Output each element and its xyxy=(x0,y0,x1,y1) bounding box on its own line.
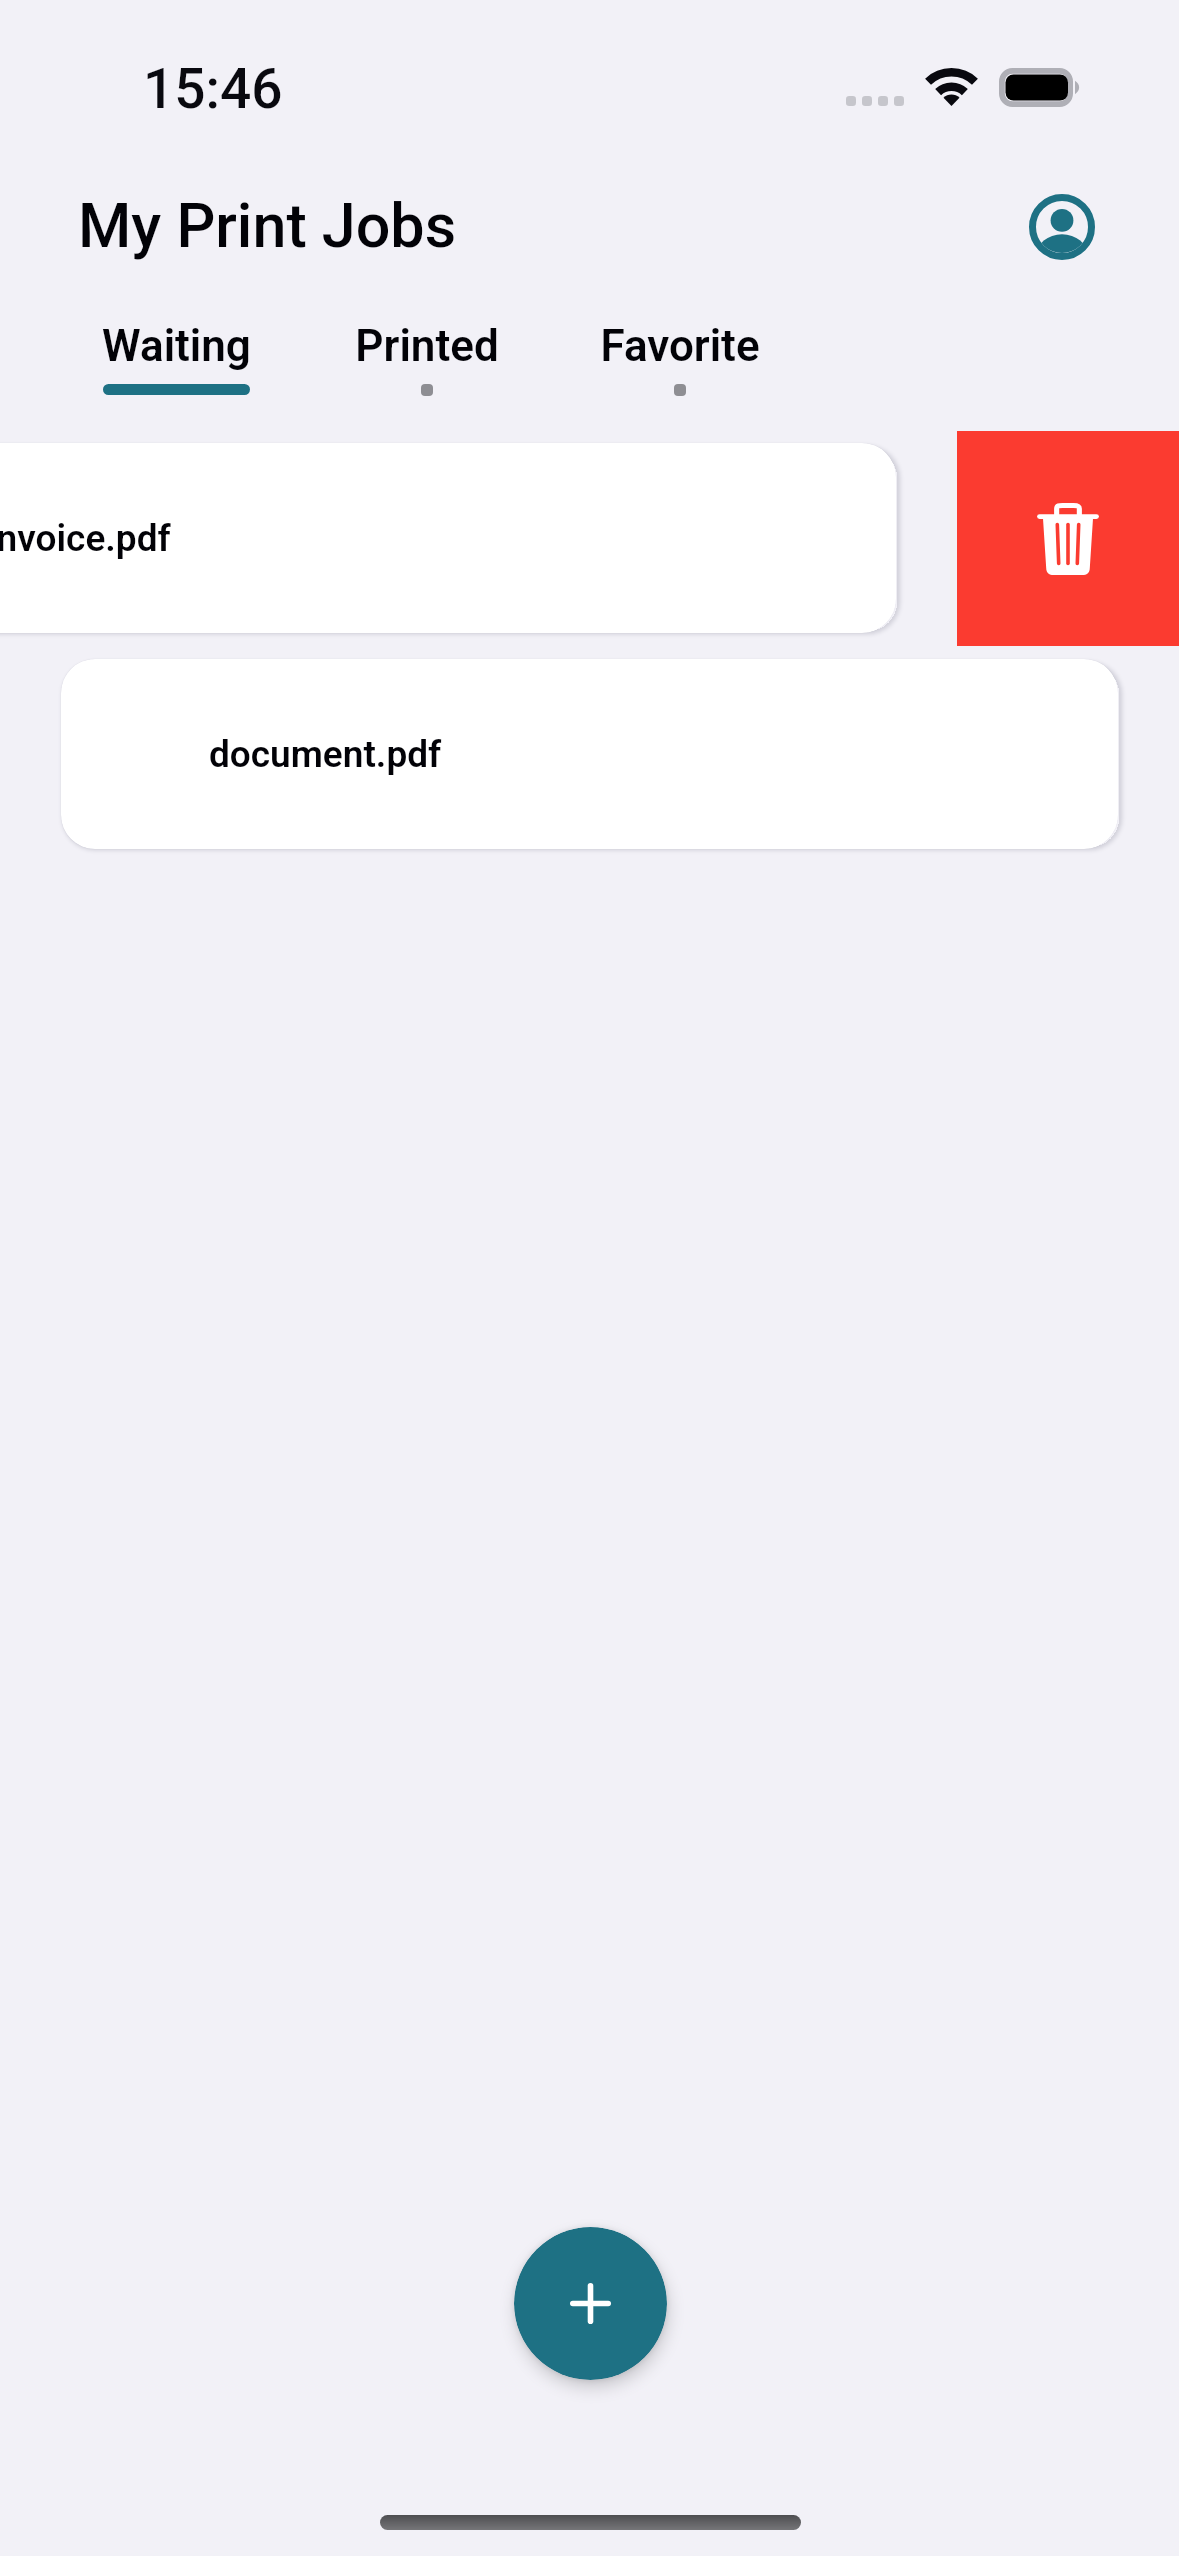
button[interactable]: Favorite xyxy=(600,320,760,396)
button[interactable]: document.pdf xyxy=(61,659,1118,849)
button[interactable]: Printed xyxy=(353,320,501,396)
staticText: My Print Jobs xyxy=(78,190,457,261)
staticText: 15:46 xyxy=(143,57,283,121)
staticText: Printed xyxy=(355,320,499,372)
staticText: document.pdf xyxy=(209,733,442,776)
button[interactable]: invoice.pdf xyxy=(0,443,896,633)
staticText: invoice.pdf xyxy=(0,517,171,560)
button[interactable]: Delete xyxy=(957,431,1179,646)
staticText: Favorite xyxy=(600,320,760,372)
staticText: Waiting xyxy=(102,320,251,372)
button[interactable]: Add print job xyxy=(514,2227,667,2380)
button[interactable]: Waiting xyxy=(100,320,252,395)
button[interactable]: Account xyxy=(1021,186,1102,267)
